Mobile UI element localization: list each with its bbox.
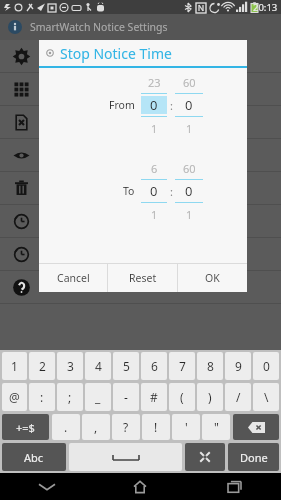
staticText: 1 — [186, 121, 193, 136]
button[interactable]: Cancel — [39, 264, 107, 292]
button[interactable]: 0 — [175, 96, 203, 114]
staticText: 0 — [185, 182, 193, 200]
staticText: 0 — [263, 358, 270, 374]
staticText: 1 — [11, 358, 18, 374]
button[interactable]: 0 — [175, 182, 203, 200]
staticText: 7 — [179, 358, 186, 374]
button[interactable]: _ — [85, 383, 111, 411]
staticText: : — [170, 98, 173, 113]
staticText: 0 — [150, 96, 158, 114]
staticText: " — [214, 419, 219, 435]
button[interactable]: 7 — [169, 352, 195, 380]
staticText: \ — [264, 389, 269, 405]
button[interactable]: ; — [57, 383, 83, 411]
staticText: Abc — [24, 450, 44, 465]
staticText: 8 — [207, 358, 214, 374]
button[interactable]: - — [113, 383, 139, 411]
button[interactable]: READ ME — [0, 271, 281, 303]
button[interactable]: 9 — [225, 352, 251, 380]
button[interactable]: 5 — [113, 352, 139, 380]
staticText: 3 — [67, 358, 74, 374]
staticText: 1 — [186, 207, 193, 222]
button[interactable]: ? — [112, 414, 140, 440]
button[interactable]: 0 — [253, 352, 279, 380]
button[interactable] — [0, 106, 281, 138]
button[interactable]: 2 — [29, 352, 55, 380]
staticText: ! — [154, 419, 158, 435]
button[interactable] — [0, 139, 281, 171]
staticText: 0 — [150, 182, 158, 200]
staticText: Cancel — [57, 271, 90, 285]
button[interactable]: 1 — [2, 352, 27, 380]
staticText: , — [94, 419, 98, 435]
staticText: 2 — [39, 358, 46, 374]
button[interactable] — [0, 172, 281, 204]
button[interactable]: 0 — [141, 96, 167, 114]
button[interactable]: # — [141, 383, 167, 411]
staticText: 0 — [185, 96, 193, 114]
staticText: READ ME — [42, 280, 89, 295]
staticText: OK — [205, 271, 220, 285]
staticText: _ — [95, 389, 101, 405]
button[interactable]: Hide keyboard — [0, 473, 93, 500]
button[interactable]: Settings — [185, 443, 225, 471]
button[interactable] — [0, 238, 281, 270]
button[interactable]: ! — [142, 414, 170, 440]
staticText: 4 — [95, 358, 102, 374]
staticText: From — [109, 98, 135, 112]
staticText: ' — [185, 419, 188, 435]
staticText: ? — [123, 419, 129, 435]
button[interactable]: 6 — [141, 352, 167, 380]
staticText: Stop Notice Time — [60, 44, 172, 63]
staticText: 5 — [123, 358, 130, 374]
staticText: Done — [240, 450, 268, 465]
button[interactable]: ' — [172, 414, 200, 440]
button[interactable]: Reset — [108, 264, 177, 292]
staticText: +=$ — [16, 420, 35, 435]
button[interactable]: 0 — [141, 182, 167, 200]
staticText: Reset — [129, 271, 157, 285]
staticText: 1 — [151, 121, 158, 136]
button[interactable]: Home — [93, 473, 187, 500]
staticText: : — [40, 389, 44, 405]
button[interactable]: , — [82, 414, 110, 440]
button[interactable]: 4 — [85, 352, 111, 380]
button[interactable]: Space — [69, 443, 182, 471]
button[interactable]: " — [202, 414, 230, 440]
staticText: 60 — [183, 75, 196, 90]
staticText: / — [236, 389, 241, 405]
button[interactable]: OK — [178, 264, 247, 292]
staticText: @ — [9, 389, 20, 405]
button[interactable]: ( — [169, 383, 195, 411]
staticText: 9 — [235, 358, 242, 374]
staticText: 23 — [148, 75, 161, 90]
button[interactable]: Recents — [187, 473, 281, 500]
staticText: . — [64, 419, 68, 435]
staticText: SmartWatch Notice Settings — [30, 20, 168, 34]
button[interactable]: ) — [197, 383, 223, 411]
staticText: 20:13 — [253, 1, 278, 14]
staticText: 6 — [151, 161, 158, 176]
staticText: ; — [68, 389, 72, 405]
button[interactable] — [0, 205, 281, 237]
staticText: To — [123, 184, 135, 198]
button[interactable]: / — [225, 383, 251, 411]
staticText: - — [124, 389, 128, 405]
button[interactable] — [0, 73, 281, 105]
staticText: # — [150, 389, 158, 405]
button[interactable]: . — [52, 414, 80, 440]
button[interactable]: +=$ — [2, 414, 49, 440]
button[interactable]: : — [29, 383, 55, 411]
staticText: 6 — [151, 358, 158, 374]
staticText: 60 — [183, 161, 196, 176]
button[interactable]: \ — [253, 383, 279, 411]
button[interactable]: @ — [2, 383, 27, 411]
button[interactable]: Backspace — [233, 414, 279, 440]
button[interactable]: Abc — [2, 443, 66, 471]
button[interactable]: 8 — [197, 352, 223, 380]
button[interactable]: Done — [228, 443, 279, 471]
button[interactable]: 3 — [57, 352, 83, 380]
staticText: : — [170, 184, 173, 199]
button[interactable] — [0, 40, 281, 72]
staticText: 1 — [151, 207, 158, 222]
